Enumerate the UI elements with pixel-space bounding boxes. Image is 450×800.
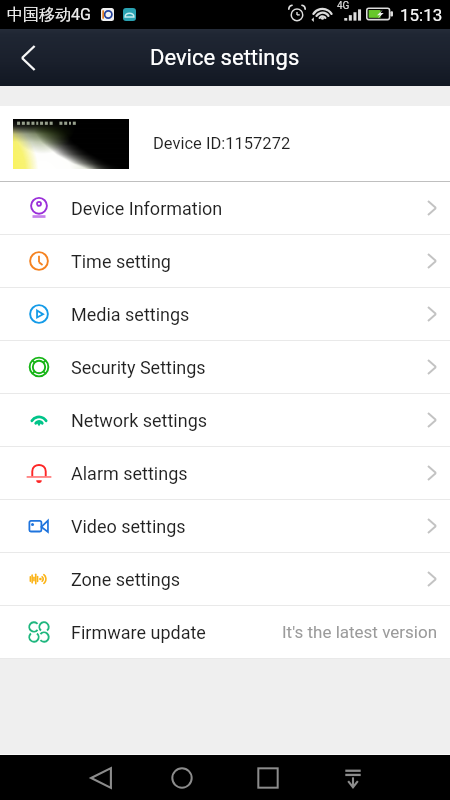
staticText: 4G (337, 0, 350, 12)
staticText: Device ID:1157272 (153, 134, 291, 153)
staticText: Time setting (71, 251, 171, 272)
staticText: 15:13 (400, 5, 443, 25)
staticText: Media settings (71, 304, 190, 325)
button[interactable]: Back (79, 755, 123, 800)
button[interactable]: Video settings (0, 500, 450, 552)
button[interactable]: Zone settings (0, 553, 450, 605)
staticText: Zone settings (71, 569, 181, 590)
button[interactable]: Network settings (0, 394, 450, 446)
button[interactable]: Time setting (0, 235, 450, 287)
staticText: It's the latest version (282, 622, 438, 642)
staticText: Network settings (71, 410, 208, 431)
button[interactable]: Media settings (0, 288, 450, 340)
staticText: Device settings (150, 45, 300, 71)
button[interactable]: Home (160, 755, 204, 800)
button[interactable]: Recent apps (246, 755, 290, 800)
button[interactable]: Hide navigation bar (331, 755, 375, 800)
button[interactable]: Firmware update (0, 606, 450, 658)
button[interactable]: Device Information (0, 182, 450, 234)
staticText: Firmware update (71, 622, 206, 643)
button[interactable]: Back (0, 29, 56, 86)
staticText: Security Settings (71, 357, 206, 378)
staticText: Device Information (71, 198, 223, 219)
button[interactable]: Security Settings (0, 341, 450, 393)
staticText: Alarm settings (71, 463, 188, 484)
staticText: Video settings (71, 516, 186, 537)
staticText: 中国移动4G (7, 5, 91, 25)
button[interactable]: Alarm settings (0, 447, 450, 499)
